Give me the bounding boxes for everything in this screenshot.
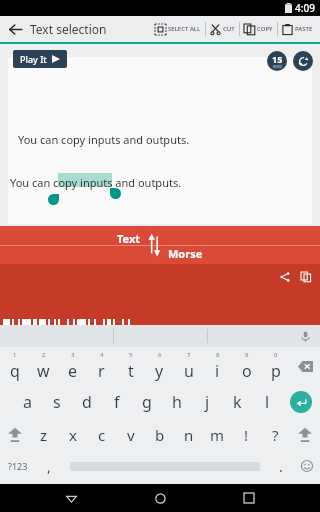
staticText: l (265, 391, 270, 413)
button[interactable]: 9 (232, 347, 261, 385)
staticText: Play It (20, 53, 47, 65)
button[interactable]: Swap direction (148, 233, 161, 257)
button[interactable]: g (132, 385, 162, 418)
staticText: WORD (273, 65, 283, 69)
button[interactable]: Shift (0, 418, 30, 451)
staticText: 8 (216, 351, 220, 359)
button[interactable]: Shift (290, 418, 320, 451)
button[interactable]: 7 (174, 347, 203, 385)
staticText: You can copy inputs and outputs. (10, 175, 182, 190)
button[interactable]: l (252, 385, 282, 418)
button[interactable]: Copy (299, 270, 313, 284)
staticText: i (215, 360, 220, 382)
staticText: SELECT ALL (168, 25, 201, 33)
button[interactable]: Enter (282, 385, 320, 418)
button[interactable]: ? (261, 418, 290, 451)
staticText: m (210, 425, 225, 445)
staticText: x (69, 425, 77, 445)
button[interactable]: 3 (58, 347, 87, 385)
staticText: j (205, 391, 210, 413)
staticText: r (98, 360, 105, 382)
button[interactable]: Voice input (299, 330, 312, 343)
button[interactable]: , (36, 451, 62, 481)
staticText: ?123 (8, 460, 28, 472)
button[interactable]: 5 (116, 347, 145, 385)
staticText: 15 (272, 53, 283, 65)
staticText: 9 (245, 351, 249, 359)
staticText: g (142, 391, 152, 413)
button[interactable]: CUT (206, 16, 239, 42)
staticText: v (127, 425, 135, 445)
staticText: 3 (71, 351, 75, 359)
staticText: 7 (187, 351, 191, 359)
button[interactable]: m (203, 418, 232, 451)
button[interactable]: Back (53, 484, 89, 512)
staticText: 1 (13, 351, 17, 359)
staticText: s (53, 391, 61, 413)
staticText: 4 (100, 351, 104, 359)
button[interactable]: Emoji (294, 451, 320, 481)
button[interactable]: Home (142, 484, 178, 512)
staticText: Text (117, 231, 141, 246)
staticText: w (37, 360, 50, 382)
staticText: . (279, 457, 283, 476)
button[interactable]: k (222, 385, 252, 418)
button[interactable]: Play It (13, 50, 67, 68)
button[interactable]: Back (0, 16, 30, 42)
button[interactable]: . (268, 451, 294, 481)
staticText: z (40, 425, 48, 445)
staticText: d (82, 391, 92, 413)
staticText: COPY (257, 25, 273, 33)
button[interactable]: a (12, 385, 42, 418)
button[interactable]: 4 (87, 347, 116, 385)
button[interactable]: Recents (231, 484, 267, 512)
button[interactable]: ?123 (0, 451, 36, 481)
staticText: ! (244, 425, 249, 445)
button[interactable]: f (102, 385, 132, 418)
button[interactable]: Space (62, 451, 268, 481)
button[interactable]: h (162, 385, 192, 418)
button[interactable]: SELECT ALL (151, 16, 205, 42)
staticText: Morse (168, 246, 203, 261)
staticText: c (98, 425, 106, 445)
staticText: 0 (274, 351, 278, 359)
staticText: a (23, 391, 32, 413)
button[interactable]: Word count (267, 51, 287, 71)
button[interactable]: v (116, 418, 145, 451)
button[interactable]: Share (278, 270, 292, 284)
staticText: h (172, 391, 182, 413)
staticText: q (10, 360, 20, 382)
button[interactable]: z (30, 418, 58, 451)
button[interactable]: 6 (145, 347, 174, 385)
staticText: CUT (223, 25, 235, 33)
button[interactable]: b (145, 418, 174, 451)
staticText: u (184, 360, 194, 382)
button[interactable]: 0 (261, 347, 290, 385)
button[interactable]: 8 (203, 347, 232, 385)
button[interactable]: PASTE (278, 16, 317, 42)
staticText: n (184, 425, 194, 445)
button[interactable]: c (87, 418, 116, 451)
button[interactable]: COPY (240, 16, 277, 42)
staticText: You can copy inputs and outputs. (18, 132, 190, 147)
button[interactable]: ! (232, 418, 261, 451)
button[interactable]: s (42, 385, 72, 418)
button[interactable]: j (192, 385, 222, 418)
staticText: 4:09 (295, 1, 315, 15)
button[interactable]: Refresh (293, 51, 313, 71)
staticText: 2 (42, 351, 46, 359)
button[interactable]: 2 (29, 347, 58, 385)
staticText: e (68, 360, 78, 382)
button[interactable]: Backspace (290, 347, 320, 385)
staticText: Text selection (30, 21, 107, 37)
staticText: f (114, 391, 120, 413)
button[interactable]: x (58, 418, 87, 451)
button[interactable]: d (72, 385, 102, 418)
staticText: 6 (158, 351, 162, 359)
staticText: y (155, 360, 164, 382)
staticText: k (233, 391, 242, 413)
button[interactable]: 1 (0, 347, 29, 385)
staticText: p (271, 360, 281, 382)
button[interactable]: n (174, 418, 203, 451)
staticText: PASTE (295, 25, 313, 33)
